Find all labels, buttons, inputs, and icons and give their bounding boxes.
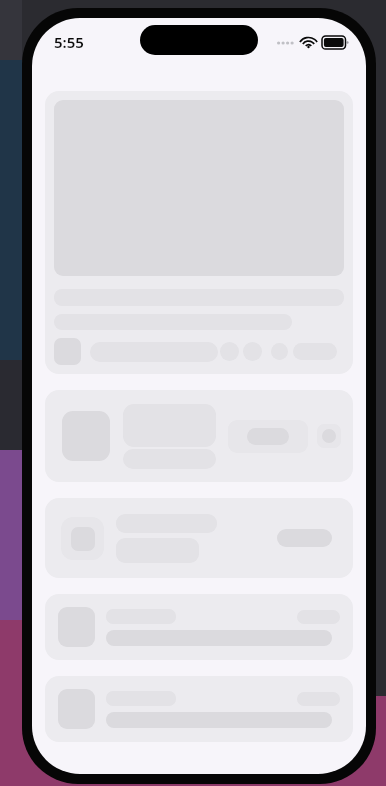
other: Wi-Fi	[301, 37, 316, 48]
button[interactable]	[45, 594, 353, 660]
button[interactable]	[45, 390, 353, 482]
other: Cellular	[276, 40, 294, 46]
button[interactable]	[45, 676, 353, 742]
button[interactable]	[45, 91, 353, 374]
other: Battery	[322, 36, 348, 49]
button[interactable]	[45, 498, 353, 578]
staticText: 5:55	[54, 32, 84, 52]
